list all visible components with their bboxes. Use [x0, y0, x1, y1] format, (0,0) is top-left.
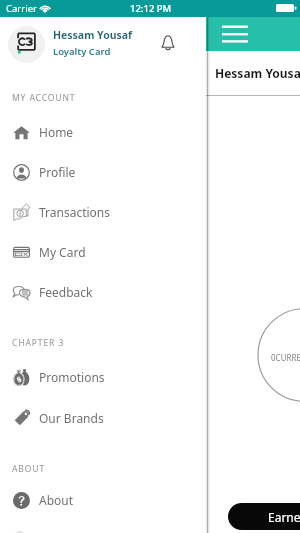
button[interactable]: Open navigation menu: [216, 17, 252, 51]
staticText: About: [39, 492, 74, 508]
button[interactable]: Account avatar: [8, 26, 45, 63]
button[interactable]: Our Brands: [0, 398, 206, 438]
staticText: 12:12 PM: [130, 2, 172, 15]
staticText: 0CURRENT BALANCE: [271, 352, 300, 363]
button[interactable]: Transactions: [0, 192, 206, 232]
button[interactable]: Home: [0, 112, 206, 152]
staticText: Our Brands: [39, 410, 104, 426]
staticText: Earned: [268, 509, 300, 525]
staticText: My Card: [39, 244, 86, 260]
staticText: Transactions: [39, 204, 111, 220]
button[interactable]: Earned: [228, 503, 300, 530]
button[interactable]: Profile: [0, 152, 206, 192]
button[interactable]: Notifications: [157, 31, 179, 53]
staticText: Hessam Yousaf: [53, 28, 133, 42]
staticText: Carrier: [6, 2, 37, 15]
staticText: Hessam Yousaf: [215, 65, 300, 81]
staticText: Promotions: [39, 369, 105, 385]
button[interactable]: About: [0, 480, 206, 520]
staticText: Feedback: [39, 284, 93, 300]
staticText: MY ACCOUNT: [12, 92, 76, 104]
staticText: Loyalty Card: [53, 45, 111, 58]
staticText: ABOUT: [12, 463, 46, 475]
button[interactable]: Promotions: [0, 357, 206, 397]
staticText: Profile: [39, 164, 76, 180]
button[interactable]: My Card: [0, 232, 206, 272]
staticText: CHAPTER 3: [12, 337, 65, 349]
staticText: Home: [39, 124, 74, 140]
button[interactable]: Feedback: [0, 272, 206, 312]
